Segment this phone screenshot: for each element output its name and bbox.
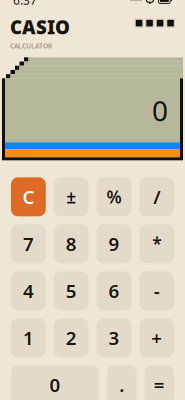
staticText: . xyxy=(119,372,124,397)
button[interactable]: 0 xyxy=(11,365,99,400)
staticText: / xyxy=(153,184,160,209)
button[interactable]: 7 xyxy=(11,224,46,263)
staticText: 0 xyxy=(49,372,60,397)
button[interactable]: 6 xyxy=(96,271,131,310)
button[interactable]: + xyxy=(139,318,174,357)
staticText: 1 xyxy=(23,325,34,350)
button[interactable]: * xyxy=(139,224,174,263)
button[interactable]: % xyxy=(96,177,131,216)
staticText: CASIO xyxy=(10,15,70,39)
button[interactable]: 8 xyxy=(54,224,89,263)
button[interactable]: 5 xyxy=(54,271,89,310)
staticText: 0 xyxy=(152,92,168,129)
button[interactable]: . xyxy=(107,365,136,400)
staticText: ± xyxy=(66,185,76,208)
staticText: 7 xyxy=(23,231,34,256)
staticText: % xyxy=(106,185,121,208)
button[interactable]: 1 xyxy=(11,318,46,357)
button[interactable]: C xyxy=(11,177,46,216)
button[interactable]: ± xyxy=(54,177,89,216)
button[interactable]: = xyxy=(144,365,174,400)
staticText: 4 xyxy=(23,278,34,303)
button[interactable]: 3 xyxy=(96,318,131,357)
button[interactable]: 2 xyxy=(54,318,89,357)
staticText: 8 xyxy=(66,231,77,256)
button[interactable]: / xyxy=(139,177,174,216)
staticText: 2 xyxy=(66,325,77,350)
staticText: - xyxy=(154,278,160,303)
staticText: CALCULATOR xyxy=(10,41,52,50)
staticText: 3 xyxy=(108,325,119,350)
button[interactable]: - xyxy=(139,271,174,310)
button[interactable]: 9 xyxy=(96,224,131,263)
staticText: 5 xyxy=(66,278,77,303)
staticText: 9 xyxy=(108,231,119,256)
staticText: C xyxy=(22,184,34,209)
staticText: + xyxy=(151,325,162,350)
staticText: 6:37 xyxy=(13,0,37,8)
button[interactable]: 4 xyxy=(11,271,46,310)
staticText: = xyxy=(154,372,165,397)
staticText: 6 xyxy=(108,278,119,303)
staticText: * xyxy=(152,232,161,255)
